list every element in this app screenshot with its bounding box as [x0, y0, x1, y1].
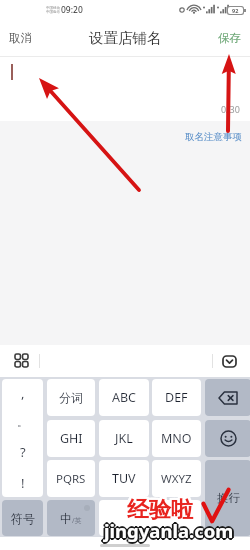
staticText: 92 — [232, 7, 239, 14]
button[interactable]: Switch language — [47, 500, 95, 536]
button[interactable]: MNO — [152, 420, 201, 457]
staticText: ABC — [112, 389, 137, 406]
button[interactable]: Keyboard panel — [15, 354, 28, 367]
staticText: 经验啦 — [127, 494, 193, 522]
staticText: 。 — [17, 415, 28, 429]
staticText: ? — [20, 443, 26, 461]
button[interactable]: 取名注意事项 — [179, 127, 248, 146]
button[interactable]: 分词 — [47, 379, 95, 416]
staticText: 换行 — [217, 491, 240, 505]
staticText: 经验啦 — [129, 494, 195, 522]
staticText: WXYZ — [161, 471, 192, 487]
button[interactable]: JKL — [99, 420, 149, 457]
button[interactable]: Hide keyboard — [222, 355, 237, 368]
staticText: jingyanla.com — [104, 520, 234, 545]
button[interactable]: 取消 — [0, 20, 41, 56]
staticText: 中国移动 — [46, 6, 60, 10]
button[interactable]: ABC — [99, 379, 149, 416]
staticText: jingyanla.com — [103, 519, 233, 544]
staticText: 经验啦 — [129, 496, 195, 524]
staticText: 保存 — [218, 31, 241, 45]
staticText: 中国电信 — [46, 10, 60, 14]
button[interactable]: Punctuation — [2, 379, 43, 497]
staticText: 经验啦 — [125, 496, 191, 524]
staticText: jingyanla.com — [102, 518, 232, 543]
staticText: TUV — [112, 470, 136, 487]
staticText: 经验啦 — [127, 498, 193, 526]
staticText: 09:20 — [61, 4, 83, 16]
staticText: jingyanla.com — [103, 517, 233, 542]
staticText: 经验啦 — [125, 498, 191, 526]
staticText: 取消 — [9, 31, 32, 45]
staticText: 取名注意事项 — [185, 131, 242, 143]
staticText: 符号 — [11, 511, 35, 526]
staticText: 设置店铺名 — [89, 29, 162, 47]
button[interactable]: DEF — [152, 379, 201, 416]
staticText: jingyanla.com — [105, 519, 235, 544]
staticText: ! — [21, 474, 25, 492]
button[interactable]: GHI — [47, 420, 95, 457]
staticText: 分词 — [59, 390, 83, 405]
staticText: 经验啦 — [125, 494, 191, 522]
staticText: /英 — [72, 516, 82, 526]
staticText: jingyanla.com — [106, 518, 236, 543]
button[interactable]: Emoji — [205, 420, 250, 457]
button[interactable]: PQRS — [47, 460, 95, 497]
staticText: jingyanla.com — [104, 518, 234, 543]
staticText: 经验啦 — [129, 498, 195, 526]
staticText: 经验啦 — [127, 496, 193, 524]
button[interactable]: 保存 — [209, 20, 250, 56]
staticText: DEF — [165, 389, 188, 406]
staticText: jingyanla.com — [105, 517, 235, 542]
staticText: MNO — [161, 430, 192, 447]
button[interactable]: Backspace — [205, 379, 250, 416]
button[interactable]: Space — [99, 500, 201, 536]
staticText: GHI — [60, 430, 83, 447]
button[interactable]: TUV — [99, 460, 149, 497]
staticText: JKL — [115, 430, 133, 447]
button[interactable]: 换行 — [205, 460, 250, 536]
staticText: 中 — [60, 511, 72, 526]
button[interactable]: 符号 — [2, 500, 43, 536]
staticText: , — [21, 384, 25, 402]
staticText: PQRS — [56, 471, 86, 487]
button[interactable]: WXYZ — [152, 460, 201, 497]
staticText: 0/30 — [221, 103, 240, 115]
staticText: jingyanla.com — [104, 516, 234, 541]
